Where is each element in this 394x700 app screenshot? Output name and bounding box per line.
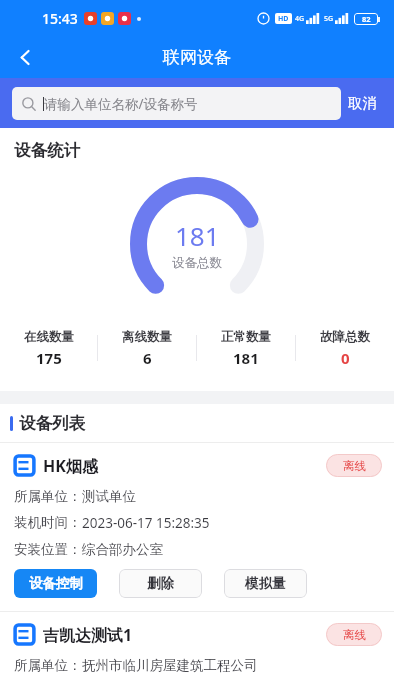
button[interactable]: HK烟感 bbox=[0, 443, 394, 611]
staticText: 吉凯达测试1 bbox=[43, 624, 133, 646]
button[interactable]: 在线数量 bbox=[0, 329, 97, 368]
staticText: 正常数量 bbox=[221, 329, 271, 345]
staticText: 设备统计 bbox=[14, 140, 80, 161]
button[interactable]: 故障总数 bbox=[296, 329, 394, 368]
staticText: 删除 bbox=[147, 575, 174, 592]
button[interactable]: 正常数量 bbox=[197, 329, 295, 368]
staticText: 离线 bbox=[343, 459, 366, 473]
staticText: 抚州市临川房屋建筑工程公司 bbox=[82, 657, 258, 674]
staticText: 所属单位： bbox=[14, 488, 82, 505]
button[interactable]: 离线 bbox=[326, 623, 382, 646]
staticText: 6 bbox=[143, 348, 152, 368]
staticText: 所属单位： bbox=[14, 657, 82, 674]
staticText: 请输入单位名称/设备称号 bbox=[44, 95, 198, 113]
button[interactable]: 取消 bbox=[341, 88, 384, 118]
button[interactable]: 请输入单位名称/设备称号 bbox=[12, 87, 341, 120]
staticText: 15:43 bbox=[42, 9, 78, 28]
staticText: 综合部办公室 bbox=[82, 541, 163, 558]
button[interactable]: 删除 bbox=[119, 569, 202, 598]
staticText: 4G bbox=[295, 14, 305, 24]
staticText: 取消 bbox=[348, 94, 377, 112]
staticText: 175 bbox=[36, 348, 62, 368]
staticText: 故障总数 bbox=[320, 329, 370, 345]
staticText: HK烟感 bbox=[43, 455, 98, 477]
staticText: 181 bbox=[233, 348, 259, 368]
staticText: 设备总数 bbox=[172, 255, 222, 271]
button[interactable]: 设备控制 bbox=[14, 569, 97, 598]
staticText: 离线 bbox=[343, 628, 366, 642]
staticText: 测试单位 bbox=[82, 488, 136, 505]
staticText: 5G bbox=[324, 14, 334, 24]
staticText: 82 bbox=[362, 14, 371, 24]
staticText: 模拟量 bbox=[245, 575, 286, 592]
staticText: 设备列表 bbox=[19, 413, 85, 434]
staticText: 联网设备 bbox=[163, 47, 231, 68]
button[interactable]: 模拟量 bbox=[224, 569, 307, 598]
button[interactable]: 吉凯达测试1 bbox=[0, 612, 394, 685]
button[interactable]: 离线数量 bbox=[98, 329, 196, 368]
staticText: 2023-06-17 15:28:35 bbox=[82, 514, 210, 532]
button[interactable]: 离线 bbox=[326, 454, 382, 477]
staticText: HD bbox=[278, 14, 289, 24]
staticText: 安装位置： bbox=[14, 541, 82, 558]
staticText: 在线数量 bbox=[24, 329, 74, 345]
staticText: 装机时间： bbox=[14, 514, 82, 531]
staticText: 0 bbox=[341, 348, 350, 368]
button[interactable]: 返回 bbox=[0, 36, 50, 78]
staticText: 181 bbox=[175, 218, 220, 253]
staticText: 设备控制 bbox=[29, 575, 83, 592]
staticText: 离线数量 bbox=[122, 329, 172, 345]
